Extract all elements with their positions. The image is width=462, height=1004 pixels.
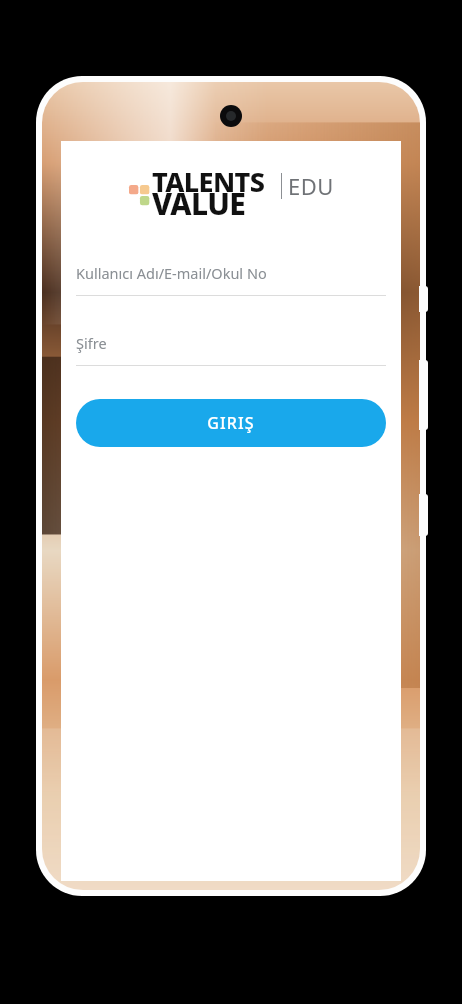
- staticText: EDU: [288, 171, 334, 201]
- staticText: Kullanıcı Adı/E-mail/Okul No: [76, 263, 267, 283]
- button[interactable]: GIRIŞ: [76, 399, 386, 447]
- staticText: GIRIŞ: [207, 412, 255, 434]
- staticText: Şifre: [76, 333, 107, 353]
- staticText: TALENTS: [152, 163, 265, 200]
- button[interactable]: Şifre: [76, 333, 386, 366]
- staticText: VALUE: [152, 183, 246, 224]
- button[interactable]: Kullanıcı Adı/E-mail/Okul No: [76, 263, 386, 296]
